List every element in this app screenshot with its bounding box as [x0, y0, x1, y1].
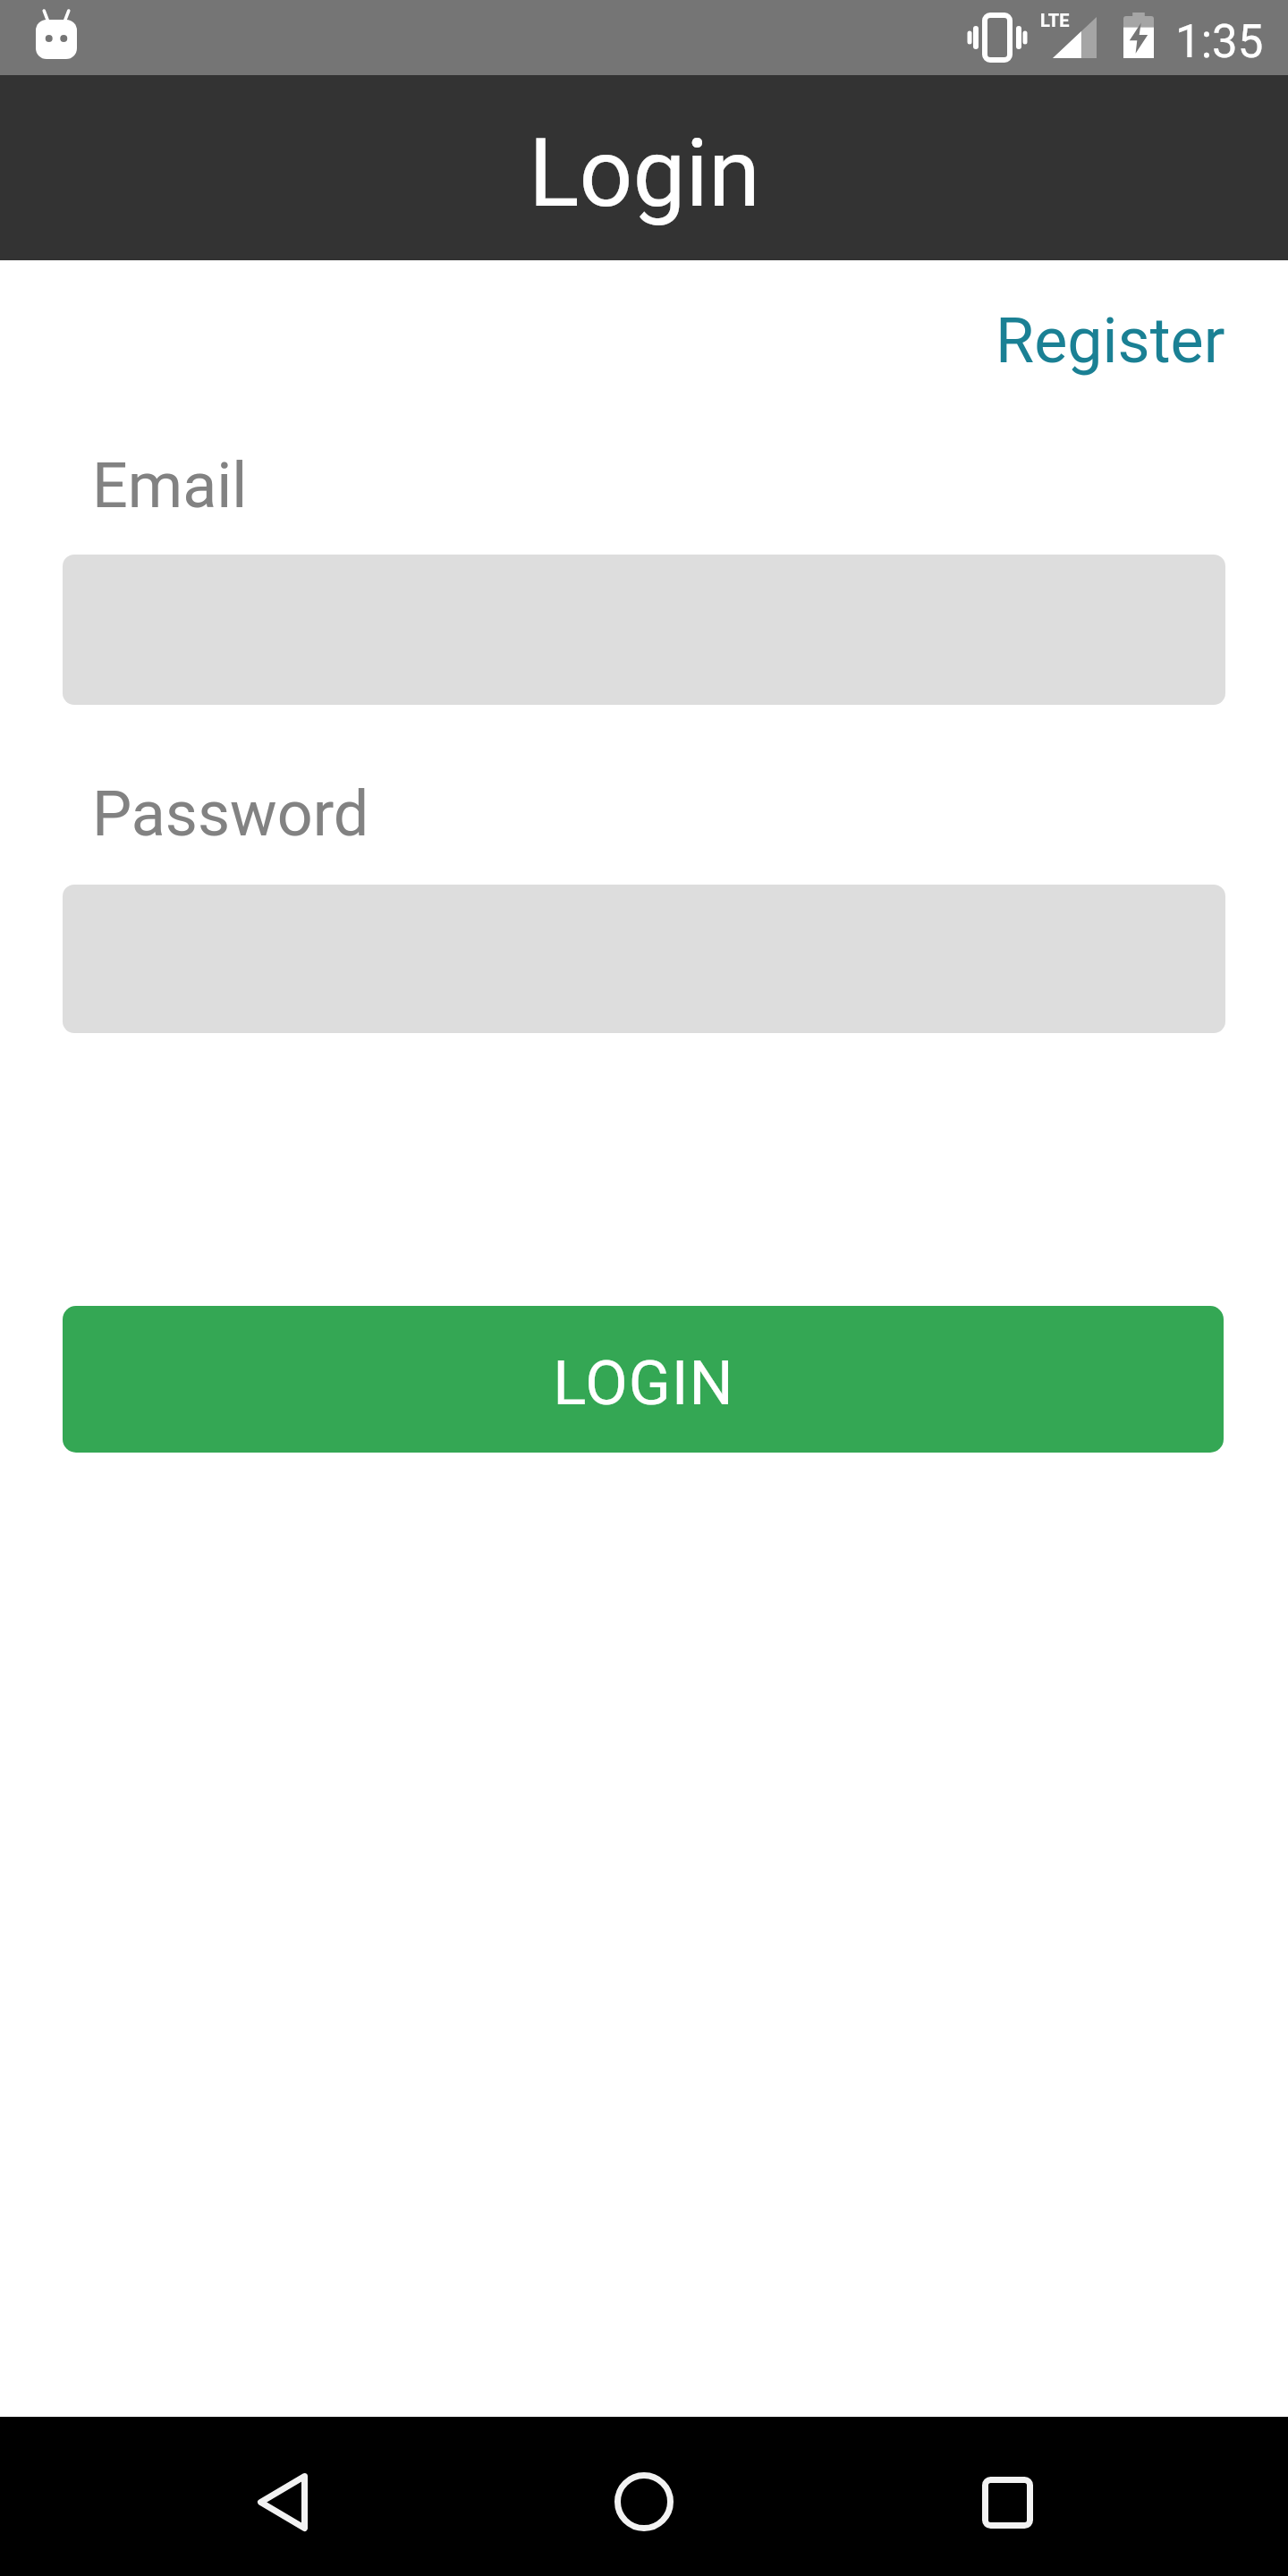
staticText: LOGIN: [553, 1347, 734, 1419]
button[interactable]: [964, 2457, 1050, 2548]
staticText: Password: [92, 777, 369, 851]
button[interactable]: LOGIN: [63, 1306, 1224, 1453]
button[interactable]: Register: [778, 287, 1225, 394]
staticText: Email: [92, 449, 248, 522]
staticText: Register: [996, 304, 1225, 377]
staticText: LTE: [1040, 10, 1070, 30]
button[interactable]: [240, 2454, 326, 2550]
staticText: Login: [529, 119, 760, 229]
button[interactable]: [599, 2457, 689, 2546]
staticText: 1:35: [1175, 15, 1264, 69]
